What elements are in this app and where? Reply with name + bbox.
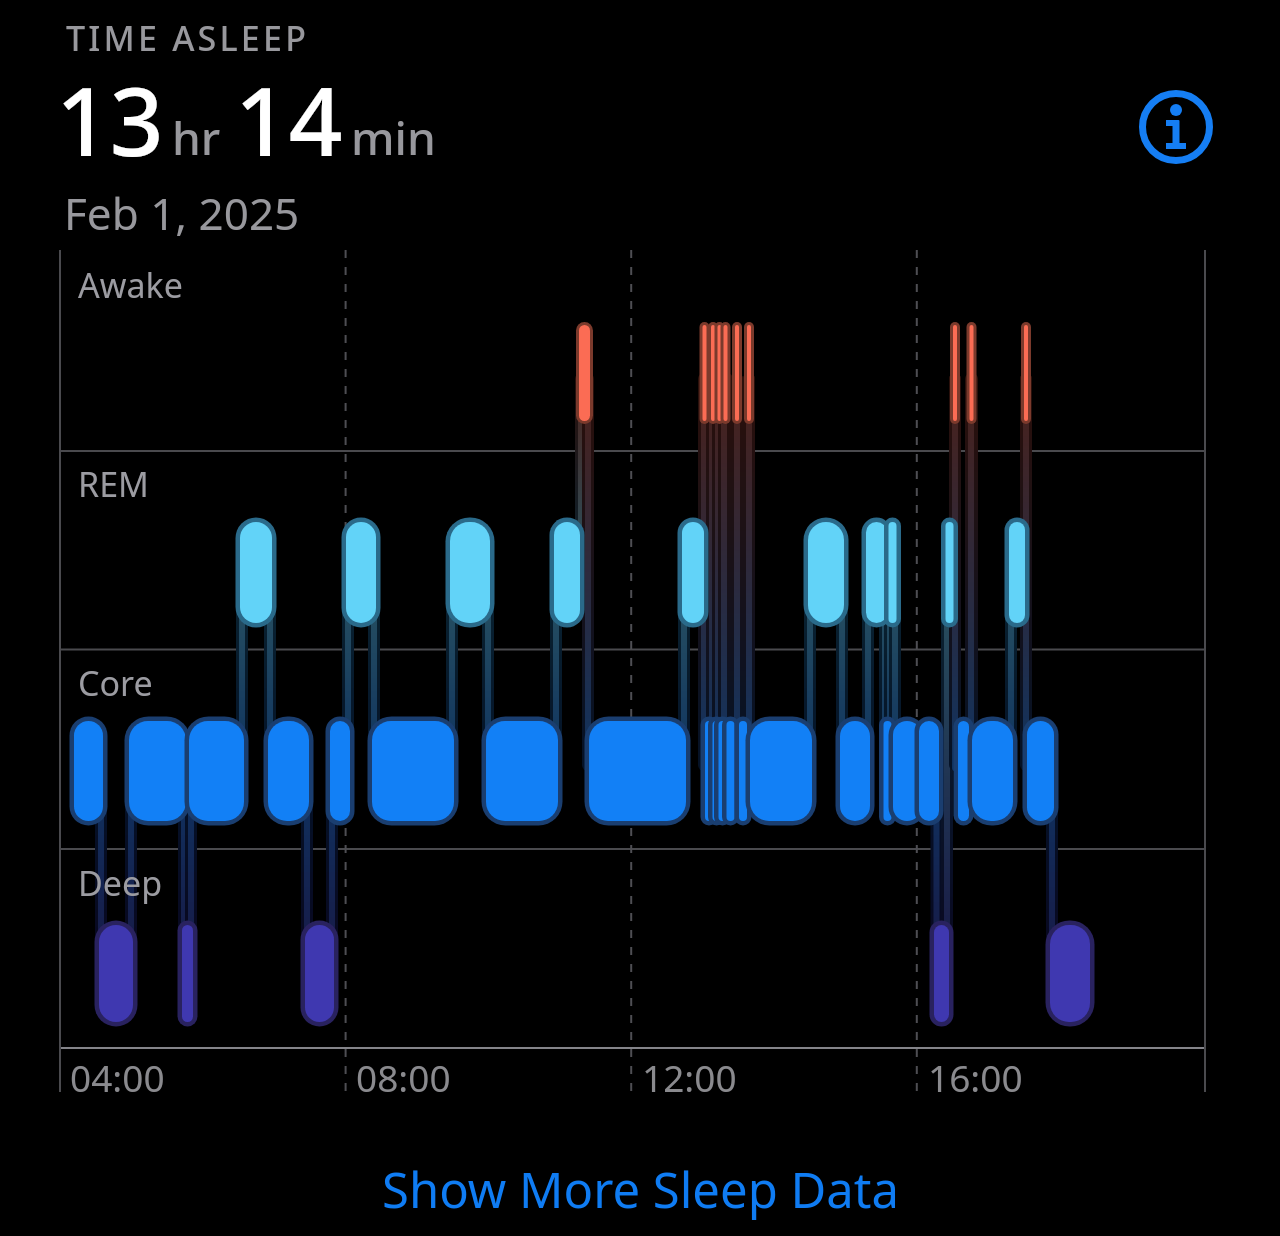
staticText: 16:00 [928, 1052, 1023, 1102]
staticText: Deep [78, 860, 163, 906]
staticText: 14 [235, 56, 343, 184]
staticText: Show More Sleep Data [382, 1156, 899, 1223]
staticText: 12:00 [642, 1052, 737, 1102]
staticText: Core [78, 660, 153, 706]
button[interactable]: Show More Sleep Data [382, 1156, 899, 1223]
staticText: REM [78, 461, 149, 507]
staticText: 04:00 [70, 1052, 165, 1102]
staticText: min [351, 106, 436, 169]
staticText: hr [172, 106, 221, 169]
staticText: 13 [56, 56, 164, 184]
staticText: Awake [78, 262, 183, 308]
button[interactable] [1138, 89, 1214, 165]
staticText: 08:00 [356, 1052, 451, 1102]
staticText: Feb 1, 2025 [64, 183, 300, 243]
staticText: TIME ASLEEP [66, 15, 310, 61]
